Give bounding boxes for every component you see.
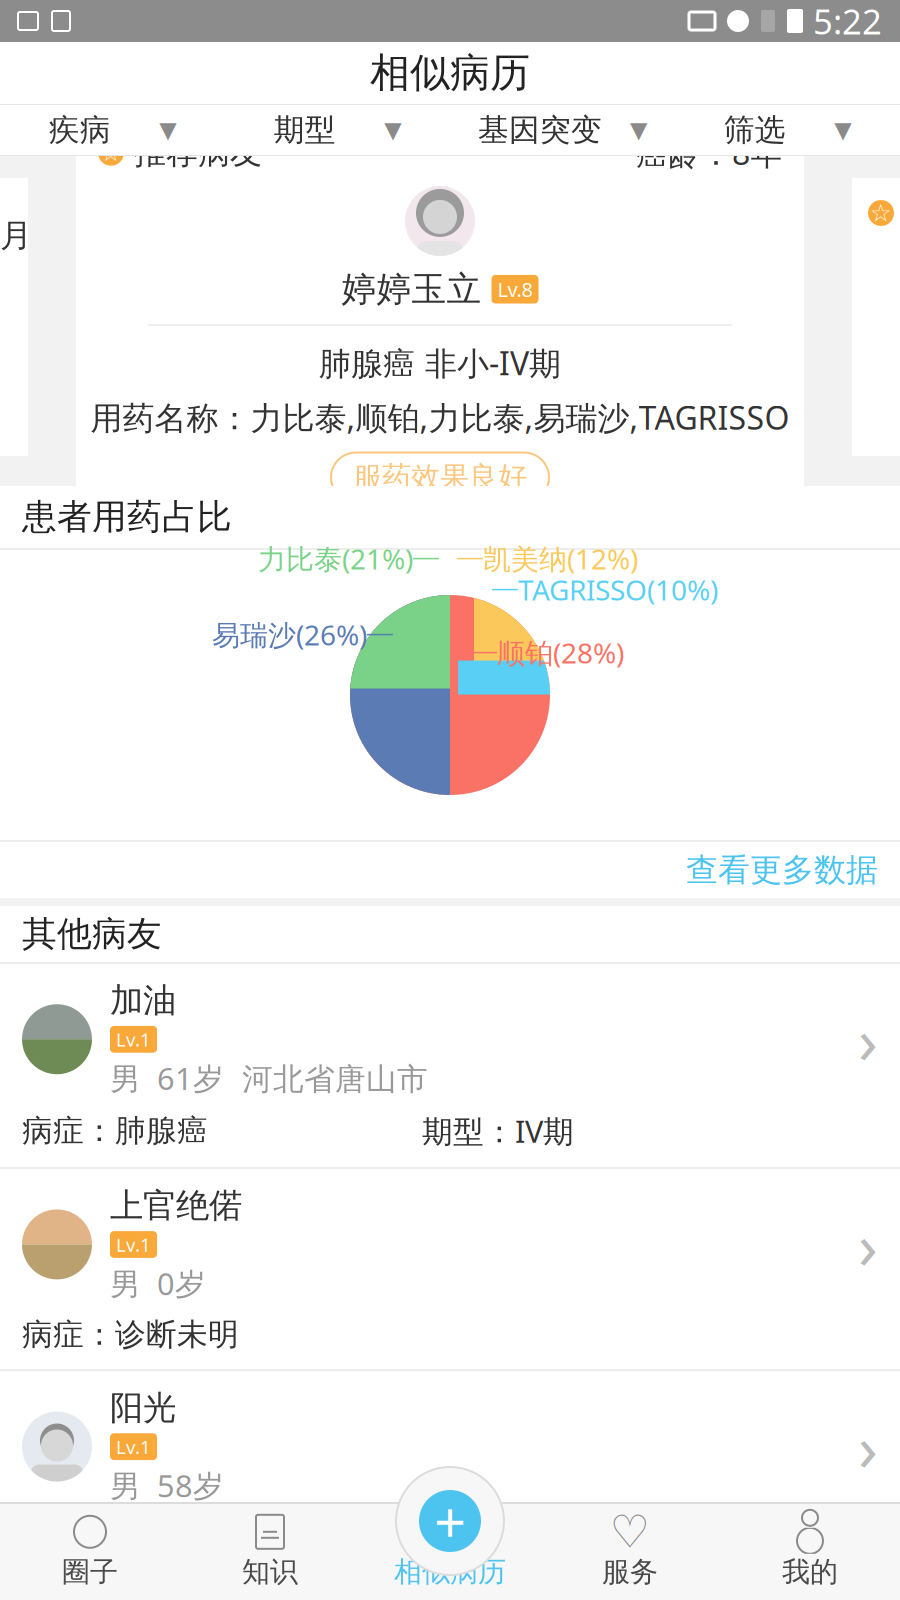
staticText: 病症：肺腺癌 — [22, 1112, 208, 1150]
staticText: ▼ — [159, 117, 176, 143]
staticText: 月 — [0, 216, 32, 255]
staticText: 病症：诊断未明 — [22, 1316, 239, 1353]
staticText: 男 58岁 — [110, 1465, 224, 1506]
staticText: 阳光 — [110, 1387, 176, 1428]
staticText: TAGRISSO(10%) — [518, 571, 718, 608]
staticText: 婷婷玉立 — [341, 268, 481, 310]
staticText: + — [434, 1484, 466, 1558]
staticText: 顺铂(28%) — [497, 634, 624, 671]
staticText: › — [858, 997, 878, 1082]
staticText: 加油 — [110, 980, 176, 1021]
staticText: 病症：小细胞肺癌 — [22, 1518, 270, 1555]
staticText: › — [858, 1404, 878, 1489]
button[interactable]: 疾病 — [0, 104, 225, 156]
staticText: 男 61岁 河北省唐山市 — [110, 1058, 428, 1098]
button[interactable]: ☆ — [76, 109, 804, 525]
staticText: 上官绝偌 — [110, 1185, 242, 1226]
staticText: Lv.1 — [116, 1027, 151, 1052]
staticText: 转移：淋巴结,对侧肺,肝 — [22, 1565, 348, 1600]
button[interactable]: 圈子 — [0, 1504, 180, 1600]
staticText: 期型：IV期 — [422, 1110, 574, 1151]
staticText: 期型：广泛期 — [422, 1518, 608, 1555]
button[interactable]: 上官绝偌 — [0, 1169, 900, 1369]
staticText: ☆ — [870, 199, 892, 227]
staticText: 查看更多数据 — [686, 850, 878, 890]
staticText: 圈子 — [62, 1555, 118, 1589]
button[interactable]: 阳光 — [0, 1371, 900, 1600]
staticText: 相似病历 — [394, 1555, 506, 1589]
staticText: Lv.8 — [497, 276, 532, 303]
button[interactable]: ♡ — [540, 1504, 720, 1600]
staticText: 筛选 — [724, 111, 786, 149]
staticText: 患者用药占比 — [22, 496, 232, 538]
staticText: ▼ — [384, 117, 401, 143]
staticText: 凯美纳(12%) — [483, 540, 638, 577]
staticText: 推荐病友 — [134, 133, 262, 172]
staticText: Lv.1 — [116, 1232, 151, 1257]
staticText: 易瑞沙(26%) — [212, 616, 367, 653]
staticText: ▼ — [834, 117, 851, 143]
button[interactable]: 我的 — [720, 1504, 900, 1600]
staticText: › — [858, 1202, 878, 1287]
staticText: 5:22 — [813, 0, 882, 44]
staticText: 力比泰(21%) — [258, 540, 413, 577]
staticText: 男 0岁 — [110, 1263, 206, 1304]
button[interactable]: 期型 — [225, 104, 450, 156]
staticText: 疾病 — [49, 111, 111, 149]
staticText: 期型 — [274, 111, 336, 149]
staticText: ☆ — [100, 139, 122, 166]
button[interactable]: 基因突变 — [450, 104, 675, 156]
staticText: 服务 — [602, 1555, 658, 1589]
staticText: 我的 — [782, 1555, 838, 1589]
staticText: 其他病友 — [22, 913, 162, 955]
staticText: 相似病历 — [370, 48, 530, 97]
staticText: 癌龄：8年 — [636, 131, 782, 174]
button[interactable]: 查看更多数据 — [0, 842, 900, 898]
button[interactable]: 相似病历 — [360, 1504, 540, 1600]
staticText: 服药效果良好 — [353, 459, 527, 495]
staticText: 知识 — [242, 1555, 298, 1589]
button[interactable]: 筛选 — [675, 104, 900, 156]
staticText: ♡ — [609, 1506, 650, 1558]
staticText: 肺腺癌 非小-IV期 — [319, 341, 561, 384]
button[interactable]: 新建病历 — [419, 1490, 481, 1552]
button[interactable]: 知识 — [180, 1504, 360, 1600]
staticText: 基因突变 — [478, 111, 602, 149]
staticText: Lv.1 — [116, 1434, 151, 1459]
button[interactable]: 加油 — [0, 964, 900, 1167]
staticText: ▼ — [630, 117, 647, 143]
staticText: 用药名称：力比泰,顺铂,力比泰,易瑞沙,TAGRISSO — [90, 396, 789, 438]
